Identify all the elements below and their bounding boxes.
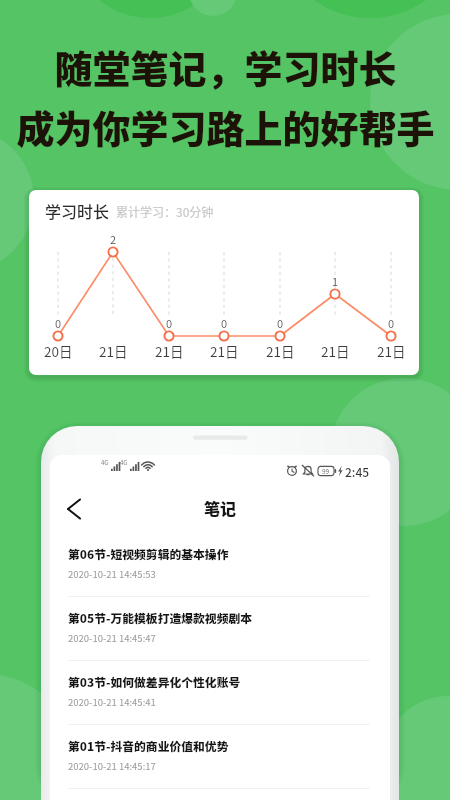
staticText: 2:45 — [345, 463, 370, 480]
button[interactable]: Back — [58, 490, 92, 524]
staticText: 21日 — [99, 341, 128, 361]
staticText: 4G — [120, 458, 128, 467]
staticText: 2020-10-21 14:45:53 — [68, 567, 156, 581]
staticText: 0 — [221, 315, 228, 331]
staticText: 0 — [166, 315, 173, 331]
staticText: 1 — [332, 273, 339, 289]
staticText: 成为你学习路上的好帮手 — [16, 99, 435, 154]
staticText: 2020-10-21 14:45:41 — [68, 695, 156, 709]
staticText: 学习时长 — [45, 199, 110, 222]
staticText: 累计学习：30分钟 — [116, 203, 214, 220]
staticText: 第05节-万能模板打造爆款视频剧本 — [68, 609, 253, 626]
staticText: 21日 — [210, 341, 239, 361]
staticText: 0 — [55, 315, 62, 331]
button[interactable]: 第06节-短视频剪辑的基本操作 — [50, 533, 390, 597]
staticText: 笔记 — [204, 496, 237, 519]
staticText: 第06节-短视频剪辑的基本操作 — [68, 545, 229, 562]
staticText: 2020-10-21 14:45:47 — [68, 631, 156, 645]
staticText: 21日 — [266, 341, 295, 361]
staticText: 0 — [388, 315, 395, 331]
staticText: 21日 — [321, 341, 350, 361]
staticText: 0 — [277, 315, 284, 331]
staticText: 20日 — [44, 341, 73, 361]
staticText: 2 — [110, 231, 117, 247]
staticText: 第01节-抖音的商业价值和优势 — [68, 737, 229, 754]
staticText: 第03节-如何做差异化个性化账号 — [68, 673, 241, 690]
staticText: 2020-10-21 14:45:17 — [68, 759, 156, 773]
button[interactable]: 第03节-如何做差异化个性化账号 — [50, 661, 390, 725]
button[interactable]: 第01节-抖音的商业价值和优势 — [50, 725, 390, 789]
staticText: 21日 — [377, 341, 406, 361]
staticText: 随堂笔记，学习时长 — [54, 39, 397, 94]
staticText: 21日 — [155, 341, 184, 361]
staticText: 99 — [322, 466, 330, 475]
staticText: 4G — [101, 458, 109, 467]
button[interactable]: 第05节-万能模板打造爆款视频剧本 — [50, 597, 390, 661]
